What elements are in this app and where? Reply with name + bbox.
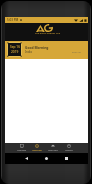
button[interactable]: Recent apps	[56, 153, 76, 164]
button[interactable]: Home	[36, 153, 56, 164]
staticText: THE GOLD MARKET APP	[35, 32, 61, 35]
staticText: 2019	[11, 50, 19, 54]
staticText: Live Rate	[17, 149, 26, 152]
button[interactable]: Sep 16	[7, 42, 22, 57]
button[interactable]: Live Rate	[14, 143, 29, 153]
button[interactable]: Back	[17, 153, 36, 164]
staticText: 22:41:30	[72, 51, 81, 54]
staticText: Contact	[65, 149, 73, 152]
button[interactable]: Gold Rate	[29, 143, 45, 153]
button[interactable]: Rate Alert	[45, 143, 61, 153]
button[interactable]: Contact	[61, 143, 77, 153]
staticText: Rate Alert	[48, 149, 58, 152]
staticText: Sep 16	[10, 45, 20, 49]
staticText: Good Morning	[25, 45, 49, 49]
staticText: 5:03 PM	[7, 18, 19, 22]
staticText: India	[25, 50, 32, 54]
staticText: Gold Rate	[32, 149, 42, 152]
